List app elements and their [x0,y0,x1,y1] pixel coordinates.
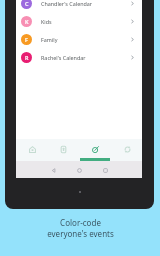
staticText: Chandler's Calendar [41,0,93,7]
button[interactable]: K [16,12,142,30]
button[interactable]: F [16,30,142,48]
staticText: Color-code [60,217,101,228]
button[interactable]: Back [46,163,60,177]
button[interactable]: Tasks [78,139,110,161]
staticText: K [25,18,29,25]
staticText: R [25,54,29,61]
staticText: Family [41,36,58,43]
button[interactable]: C [16,0,142,12]
button[interactable]: Sync [110,139,142,161]
button[interactable]: Recents [98,163,112,177]
staticText: Kids [41,18,52,25]
staticText: F [25,36,28,43]
staticText: C [25,0,29,7]
staticText: everyone's events [47,228,114,239]
button[interactable]: Home [72,163,86,177]
button[interactable]: R [16,48,142,66]
button[interactable]: Schedule [47,139,78,161]
staticText: Rachel's Calendar [41,54,86,61]
button[interactable]: Home [16,139,47,161]
